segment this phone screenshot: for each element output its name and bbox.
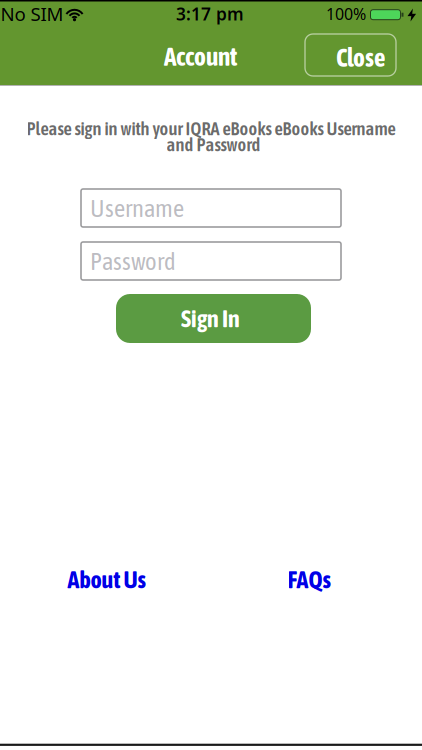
button[interactable]: About Us	[67, 566, 145, 593]
staticText: and Password	[166, 134, 260, 155]
staticText: FAQs	[287, 566, 330, 593]
button[interactable]: FAQs	[287, 566, 330, 593]
staticText: Close	[336, 43, 386, 72]
staticText: Password	[90, 247, 176, 275]
staticText: No SIM	[0, 1, 63, 26]
staticText: Sign In	[181, 305, 240, 332]
staticText: 3:17 pm	[176, 2, 244, 25]
button[interactable]: Password	[81, 242, 341, 280]
staticText: 100%	[326, 3, 366, 24]
staticText: Username	[90, 194, 184, 222]
staticText: About Us	[67, 566, 145, 593]
staticText: Account	[164, 42, 237, 71]
button[interactable]: Close	[305, 34, 396, 76]
button[interactable]: Username	[81, 189, 341, 227]
button[interactable]: Sign In	[116, 294, 311, 343]
staticText: Please sign in with your IQRA eBooks eBo…	[26, 118, 395, 139]
